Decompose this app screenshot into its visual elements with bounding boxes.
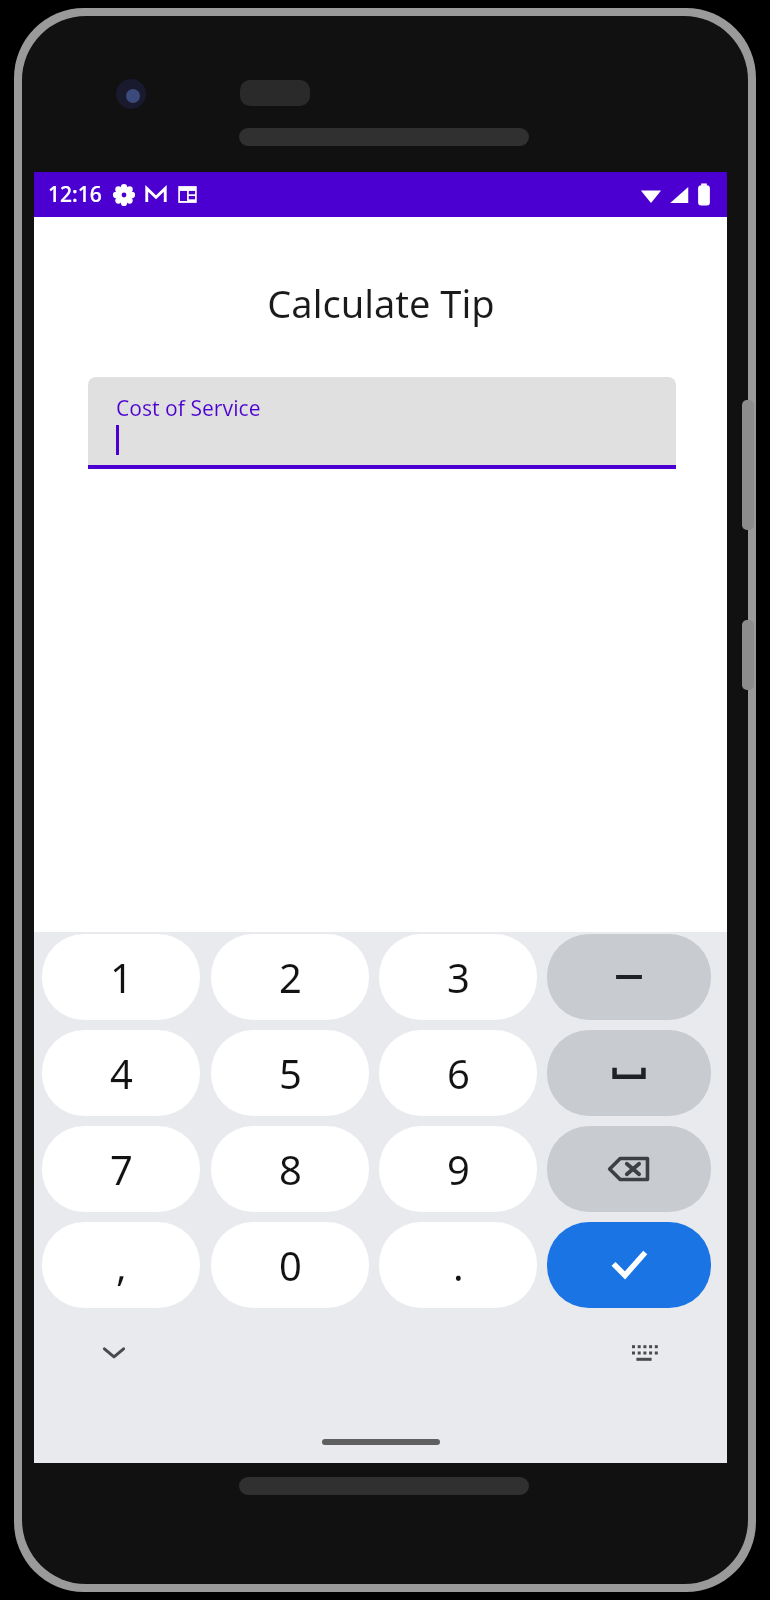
button[interactable]: Change keyboard (624, 1332, 664, 1372)
button[interactable]: 5 (211, 1030, 369, 1116)
button[interactable]: Backspace (547, 1126, 711, 1212)
button[interactable]: , (42, 1222, 200, 1308)
button[interactable]: 1 (42, 934, 200, 1020)
staticText: 6 (447, 1046, 470, 1100)
button[interactable]: Enter (547, 1222, 711, 1308)
staticText: Cost of Service (116, 394, 261, 423)
button[interactable]: 6 (379, 1030, 537, 1116)
button[interactable]: 3 (379, 934, 537, 1020)
button[interactable]: 0 (211, 1222, 369, 1308)
staticText: 12:16 (48, 180, 102, 209)
staticText: Calculate Tip (267, 277, 495, 329)
staticText: 3 (447, 950, 470, 1004)
staticText: . (453, 1238, 464, 1292)
staticText: 4 (110, 1046, 133, 1100)
button[interactable]: Hide keyboard (94, 1332, 134, 1372)
staticText: 5 (279, 1046, 302, 1100)
staticText: 9 (447, 1142, 470, 1196)
button[interactable]: 8 (211, 1126, 369, 1212)
staticText: 7 (110, 1142, 133, 1196)
button[interactable]: Cost of Service (88, 377, 676, 469)
button[interactable]: 9 (379, 1126, 537, 1212)
staticText: 0 (279, 1238, 302, 1292)
staticText: 2 (279, 950, 302, 1004)
staticText: , (116, 1238, 127, 1292)
button[interactable]: 4 (42, 1030, 200, 1116)
staticText: 8 (279, 1142, 302, 1196)
button[interactable]: . (379, 1222, 537, 1308)
button[interactable]: Space (547, 1030, 711, 1116)
button[interactable]: 2 (211, 934, 369, 1020)
staticText: 1 (110, 950, 133, 1004)
button[interactable]: 7 (42, 1126, 200, 1212)
button[interactable]: Minus (547, 934, 711, 1020)
